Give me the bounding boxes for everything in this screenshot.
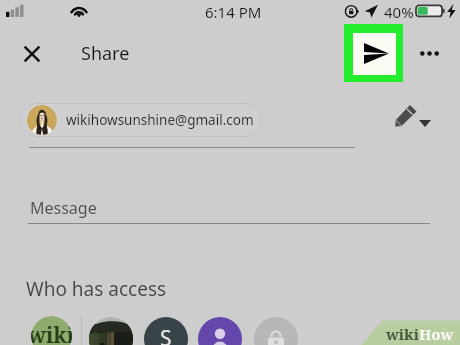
button[interactable]: Private [254, 317, 298, 345]
button[interactable]: Send [344, 24, 403, 82]
button[interactable]: Edit message options [391, 101, 435, 131]
button[interactable]: S [144, 317, 188, 345]
staticText: Who has access [26, 276, 167, 302]
staticText: wiki [28, 321, 75, 345]
button[interactable]: Account [198, 317, 242, 345]
button[interactable]: More options [411, 35, 447, 71]
button[interactable]: wikihowsunshine@gmail.com [20, 103, 262, 137]
button[interactable]: wikiHow [25, 316, 78, 345]
staticText: 6:14 PM [205, 2, 262, 22]
button[interactable]: Contact photo [89, 317, 133, 345]
staticText: S [160, 324, 172, 345]
staticText: 40% [384, 2, 414, 22]
staticText: How [419, 324, 454, 344]
staticText: Share [81, 41, 130, 66]
staticText: wiki [386, 324, 419, 344]
button[interactable]: Close [13, 35, 50, 72]
staticText: wikihowsunshine@gmail.com [66, 111, 254, 129]
staticText: H [43, 339, 61, 345]
staticText: Message [30, 197, 97, 219]
